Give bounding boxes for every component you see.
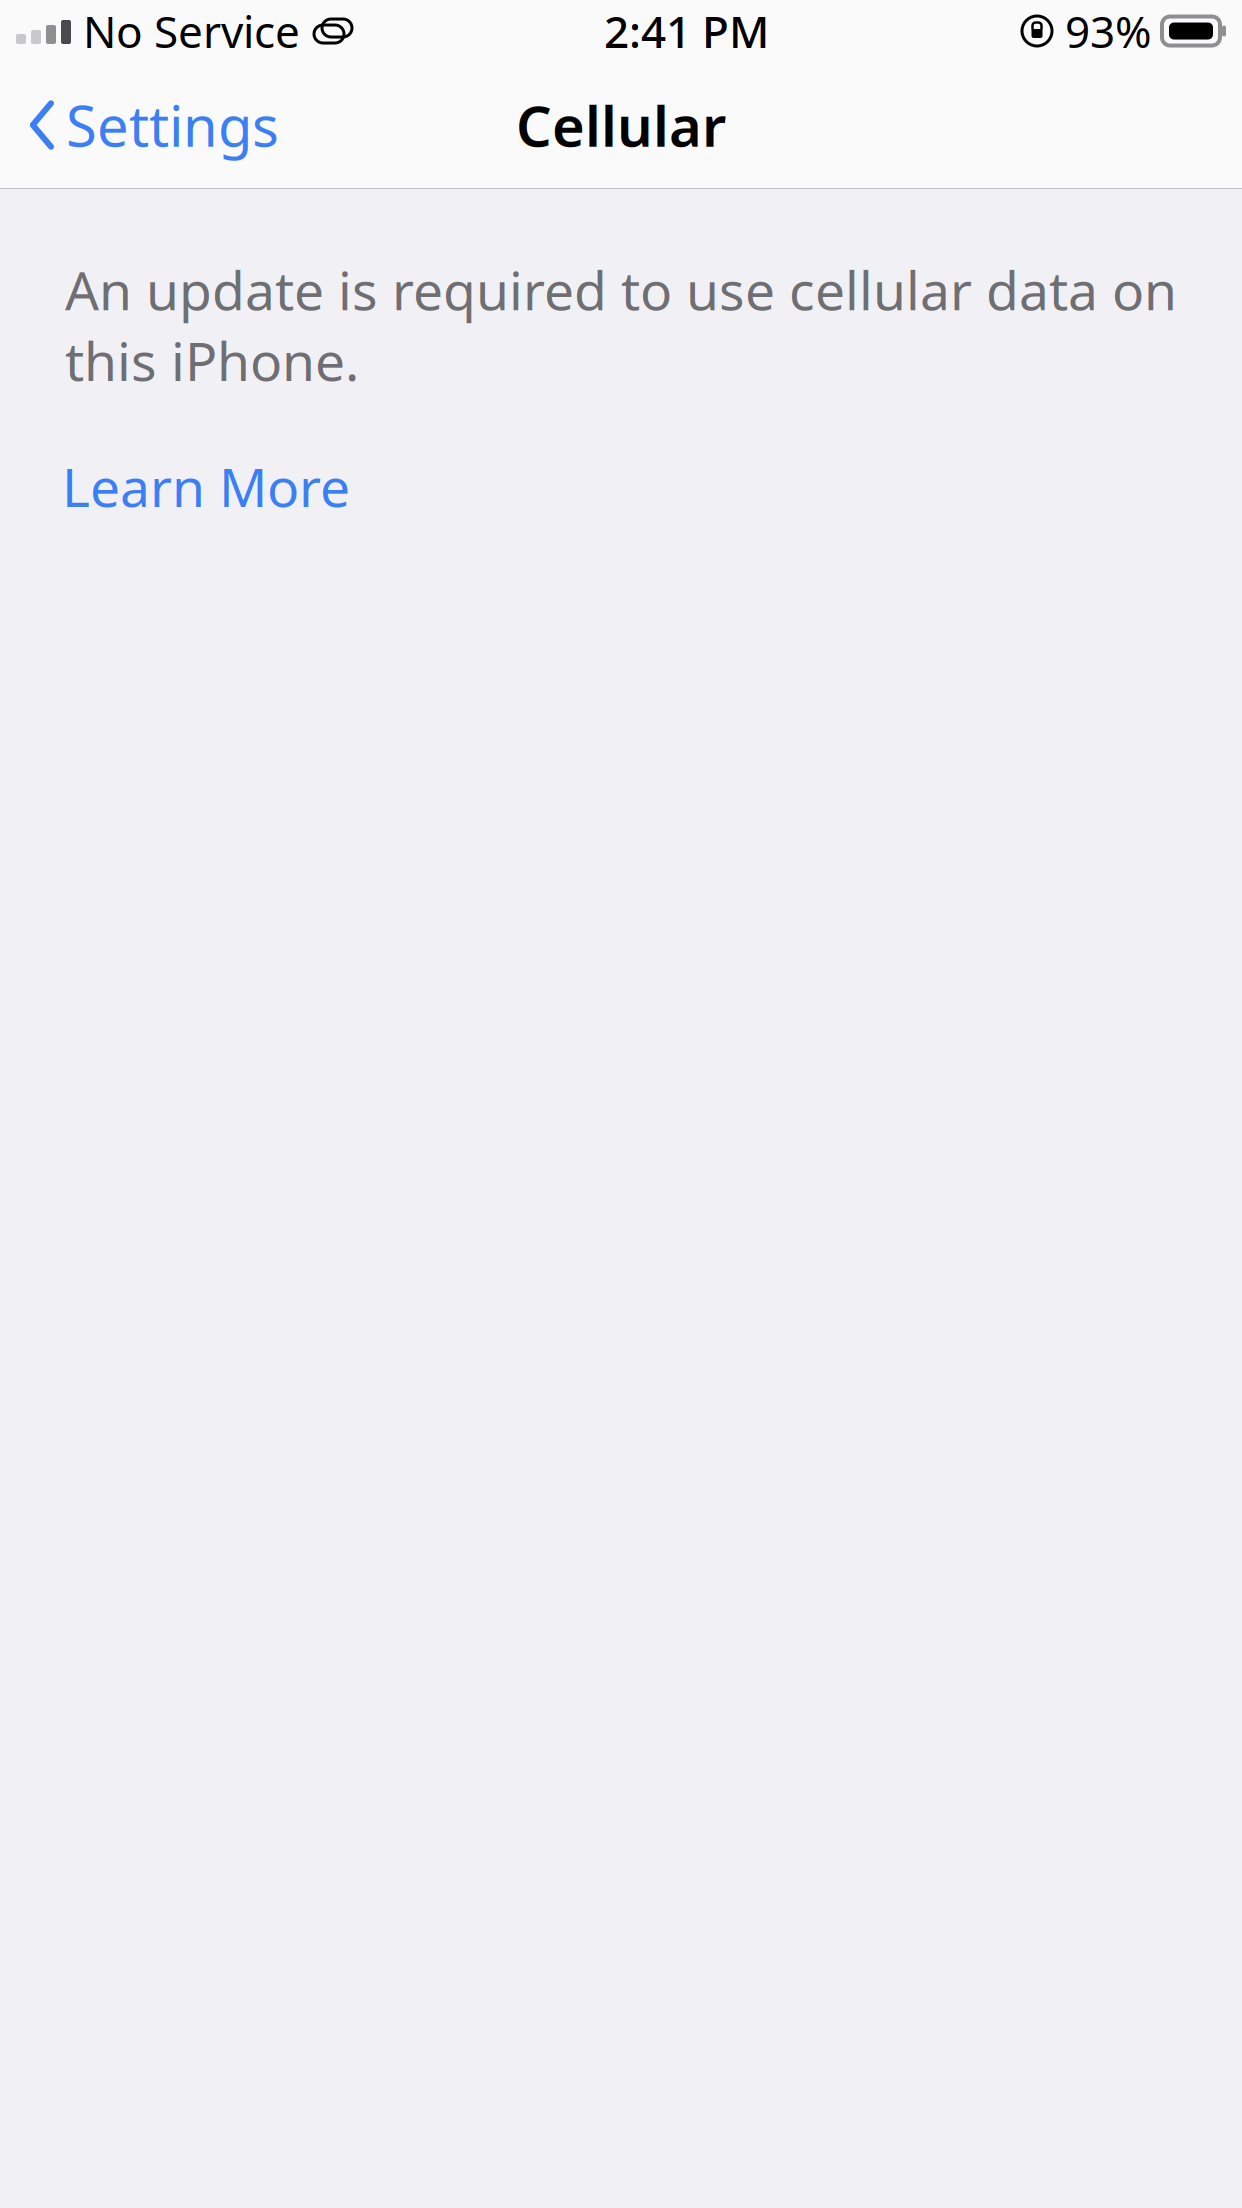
staticText: Cellular <box>516 88 726 162</box>
button[interactable]: Settings <box>0 74 279 176</box>
staticText: 2:41 PM <box>604 2 769 60</box>
staticText: No Service <box>83 2 300 60</box>
staticText: Settings <box>66 88 279 162</box>
staticText: Learn More <box>62 451 350 522</box>
button[interactable]: Learn More <box>60 441 352 532</box>
staticText: 93% <box>1065 2 1152 60</box>
staticText: An update is required to use cellular da… <box>65 254 1177 396</box>
